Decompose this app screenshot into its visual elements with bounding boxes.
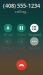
staticText: Add <box>18 45 25 50</box>
staticText: Mute <box>3 32 12 37</box>
button[interactable]: Mute <box>4 24 12 32</box>
button[interactable]: End call <box>16 60 27 70</box>
button[interactable]: More <box>30 37 38 46</box>
staticText: Hold <box>17 32 25 37</box>
staticText: More <box>29 45 39 50</box>
button[interactable]: Add call <box>17 37 25 46</box>
staticText: Keypad <box>28 32 40 37</box>
button[interactable]: Keypad <box>30 24 38 32</box>
staticText: (408) 555-1234 <box>3 2 40 9</box>
staticText: Speaker <box>1 45 15 50</box>
button[interactable]: Speaker <box>4 37 12 46</box>
staticText: calling… <box>14 9 28 14</box>
button[interactable]: Hold <box>17 24 25 32</box>
